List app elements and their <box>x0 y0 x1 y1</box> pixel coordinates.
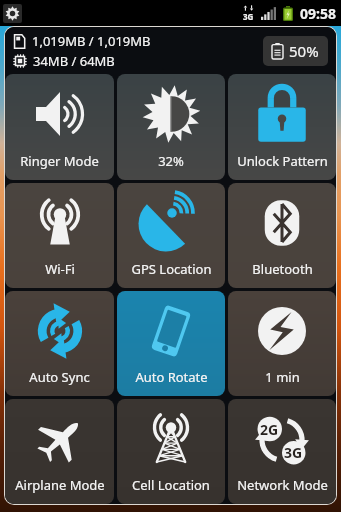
staticText: Auto Rotate <box>135 368 208 386</box>
button[interactable]: Unlock Pattern <box>228 74 336 180</box>
staticText: Wi-Fi <box>45 260 75 278</box>
staticText: 3G <box>243 11 254 22</box>
button[interactable]: Auto Sync <box>5 291 114 396</box>
staticText: Unlock Pattern <box>237 152 328 170</box>
button[interactable]: 2G <box>228 399 336 504</box>
button[interactable]: 1 min <box>228 291 336 396</box>
staticText: 3G <box>284 443 303 462</box>
staticText: 1 min <box>265 368 300 386</box>
staticText: 34MB / 64MB <box>33 52 115 70</box>
button[interactable]: 50% <box>263 36 328 66</box>
staticText: 2G <box>260 420 279 439</box>
staticText: Auto Sync <box>29 368 90 386</box>
staticText: Airplane Mode <box>15 476 105 494</box>
staticText: 1,019MB / 1,019MB <box>32 32 151 50</box>
staticText: 32% <box>158 152 184 170</box>
staticText: Ringer Mode <box>20 152 99 170</box>
button[interactable]: Wi-Fi <box>5 183 114 288</box>
staticText: GPS Location <box>131 260 212 278</box>
staticText: 09:58 <box>300 4 336 23</box>
button[interactable]: 32% <box>117 74 225 180</box>
staticText: Cell Location <box>132 476 210 494</box>
button[interactable]: GPS Location <box>117 183 225 288</box>
button[interactable]: Auto Rotate <box>117 291 225 396</box>
button[interactable]: Ringer Mode <box>5 74 114 180</box>
staticText: 50% <box>289 41 319 61</box>
staticText: Network Mode <box>237 476 328 494</box>
staticText: Bluetooth <box>252 260 313 278</box>
button[interactable]: Airplane Mode <box>5 399 114 504</box>
button[interactable]: Cell Location <box>117 399 225 504</box>
button[interactable]: Bluetooth <box>228 183 336 288</box>
